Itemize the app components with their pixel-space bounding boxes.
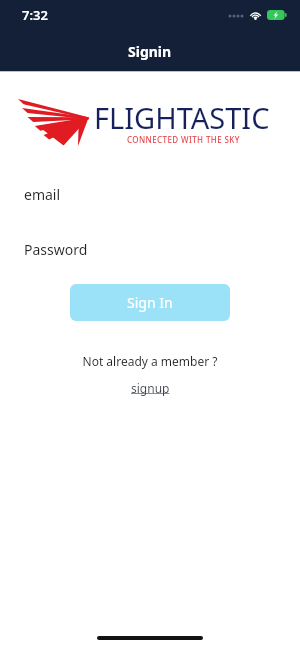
button[interactable]: Sign In <box>70 284 230 321</box>
staticText: signup <box>131 380 170 396</box>
staticText: Password <box>24 240 88 259</box>
staticText: email <box>24 185 61 204</box>
staticText: FLIGHTASTIC <box>94 98 270 137</box>
staticText: 7:32 <box>22 6 48 24</box>
staticText: CONNECTED WITH THE SKY <box>127 134 240 145</box>
staticText: Not already a member ? <box>0 353 300 369</box>
button[interactable]: signup <box>125 378 176 398</box>
button[interactable]: Password <box>0 227 300 271</box>
staticText: Sign In <box>127 293 173 312</box>
other: Battery charging <box>267 10 287 20</box>
button[interactable]: email <box>0 172 300 216</box>
staticText: Signin <box>128 42 172 61</box>
